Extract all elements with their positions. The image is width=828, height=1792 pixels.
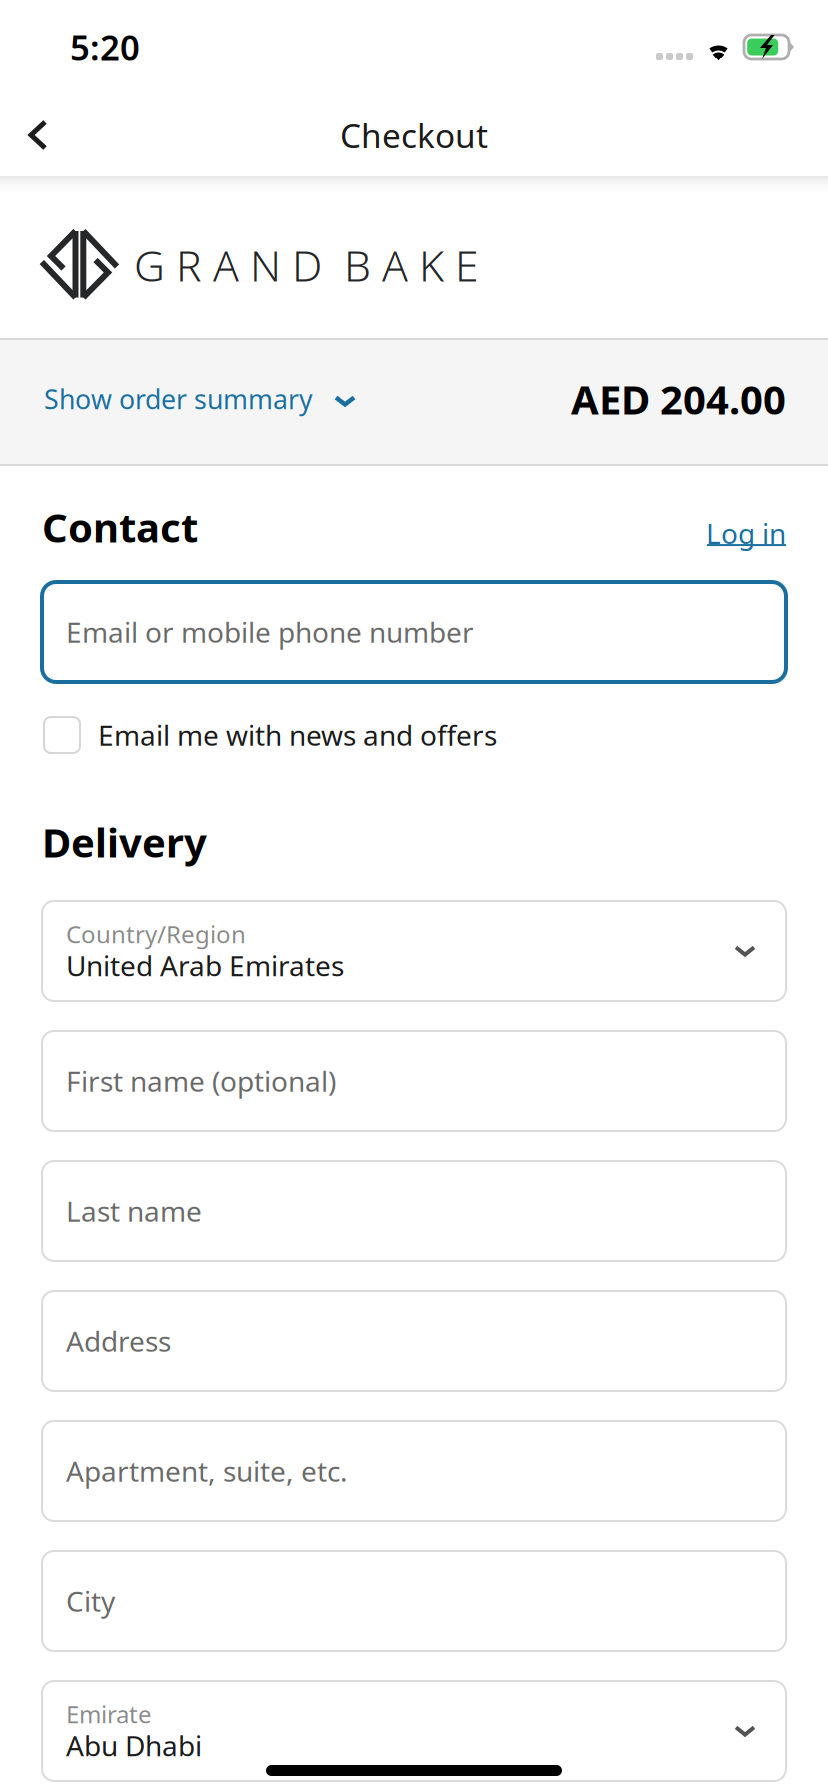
button[interactable]: Email me with news and offers: [42, 714, 786, 756]
staticText: Apartment, suite, etc.: [66, 1452, 348, 1490]
button[interactable]: First name (optional): [42, 1031, 786, 1131]
button[interactable]: Apartment, suite, etc.: [42, 1421, 786, 1521]
staticText: City: [66, 1582, 115, 1620]
staticText: G R A N D B A K E: [134, 237, 479, 293]
staticText: Emirate: [66, 1698, 152, 1730]
button[interactable]: Show order summary: [0, 340, 828, 464]
staticText: Show order summary: [44, 381, 313, 417]
button[interactable]: Address: [42, 1291, 786, 1391]
staticText: Checkout: [340, 113, 488, 157]
staticText: AED 204.00: [571, 372, 786, 425]
button[interactable]: Log in: [696, 513, 786, 553]
staticText: Email or mobile phone number: [66, 613, 474, 651]
button[interactable]: City: [42, 1551, 786, 1651]
staticText: Abu Dhabi: [66, 1727, 202, 1764]
staticText: Log in: [706, 514, 786, 552]
staticText: Country/Region: [66, 918, 246, 950]
staticText: Delivery: [42, 815, 207, 868]
staticText: Email me with news and offers: [98, 716, 497, 754]
staticText: Contact: [42, 500, 198, 553]
button[interactable]: Emirate: [42, 1681, 786, 1781]
staticText: Address: [66, 1322, 171, 1360]
button[interactable]: Back: [10, 104, 66, 166]
staticText: First name (optional): [66, 1062, 336, 1100]
button[interactable]: Last name: [42, 1161, 786, 1261]
staticText: United Arab Emirates: [66, 947, 344, 984]
button[interactable]: Email or mobile phone number: [42, 582, 786, 682]
staticText: Last name: [66, 1192, 202, 1230]
staticText: 5:20: [70, 24, 140, 70]
button[interactable]: Country/Region: [42, 901, 786, 1001]
